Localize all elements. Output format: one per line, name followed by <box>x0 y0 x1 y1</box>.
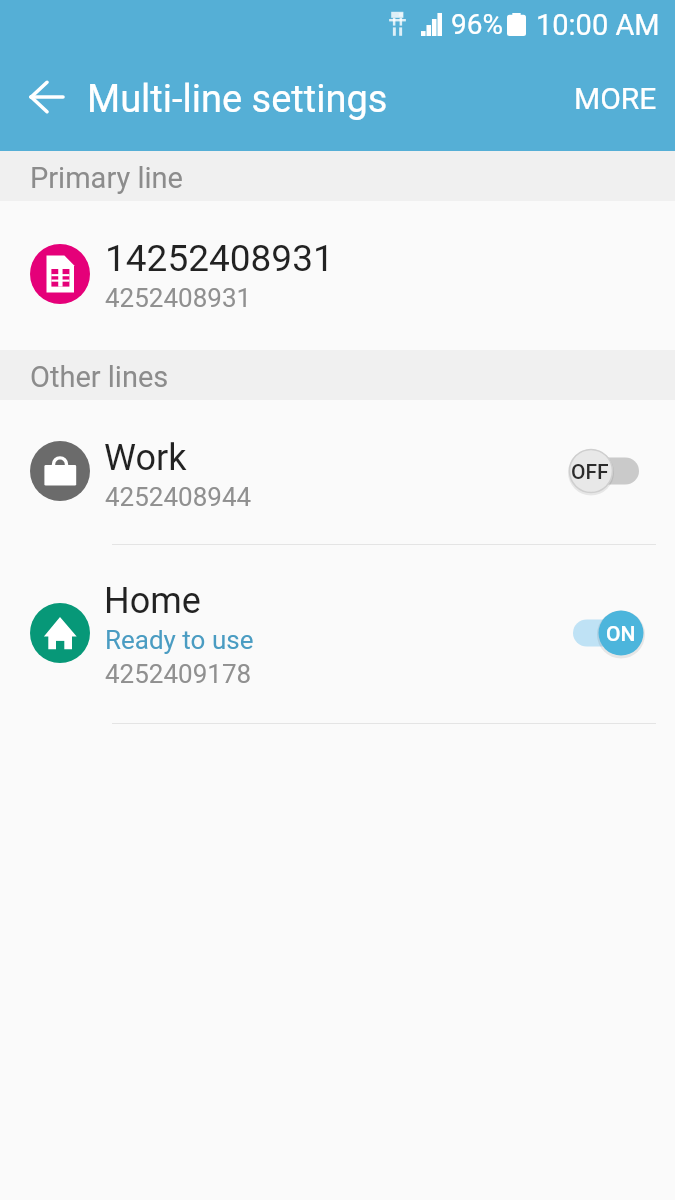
staticText: Home <box>104 580 201 622</box>
staticText: OFF <box>571 460 609 485</box>
staticText: 4252408931 <box>105 283 252 313</box>
staticText: Other lines <box>30 360 169 394</box>
staticText: 4252409178 <box>105 659 252 689</box>
button[interactable]: Home <box>0 545 675 724</box>
button[interactable]: Work <box>0 400 675 545</box>
button[interactable]: Turn off line <box>569 609 645 657</box>
staticText: MORE <box>574 81 657 116</box>
button[interactable]: 14252408931 <box>0 201 675 350</box>
staticText: Ready to use <box>105 625 254 655</box>
button[interactable]: Turn on line <box>567 447 643 495</box>
button[interactable]: MORE <box>554 59 675 138</box>
staticText: 96% <box>451 8 503 41</box>
staticText: Work <box>104 437 187 479</box>
button[interactable]: Navigate up <box>14 65 78 129</box>
staticText: 10:00 AM <box>536 8 660 42</box>
staticText: Multi-line settings <box>87 77 388 122</box>
staticText: Primary line <box>30 161 183 195</box>
staticText: ON <box>606 622 636 647</box>
staticText: 14252408931 <box>105 237 334 280</box>
staticText: 4252408944 <box>105 482 252 512</box>
